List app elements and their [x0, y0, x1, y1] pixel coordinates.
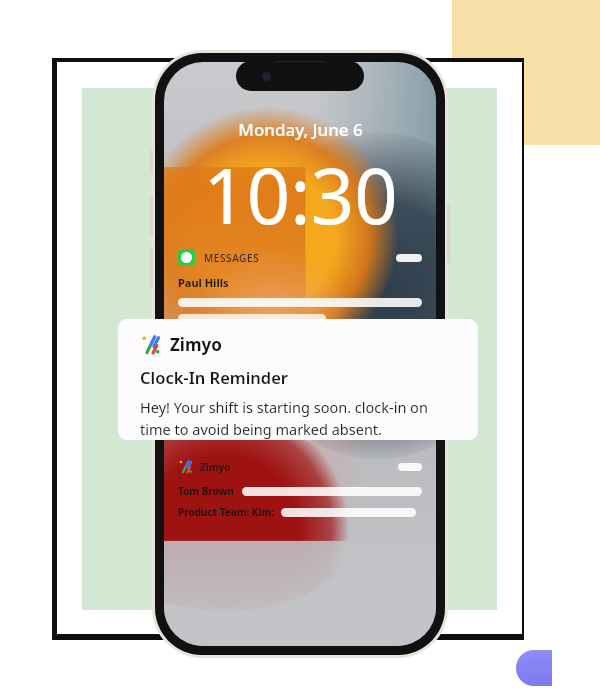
staticText: Zimyo — [170, 333, 222, 356]
staticText: Product Team: Kim: — [178, 505, 275, 519]
button[interactable]: Zimyo — [118, 319, 478, 440]
staticText: Hey! Your shift is starting soon. clock-… — [140, 397, 428, 439]
button[interactable]: MESSAGES — [164, 249, 436, 646]
staticText: Tom Brown — [178, 484, 234, 498]
button[interactable]: Zimyo — [164, 459, 436, 646]
staticText: MESSAGES — [204, 251, 260, 265]
staticText: Monday, June 6 — [238, 118, 363, 141]
staticText: Zimyo — [200, 460, 231, 474]
staticText: Clock-In Reminder — [140, 366, 289, 388]
staticText: Paul Hills — [178, 275, 229, 290]
staticText: 10:30 — [203, 143, 398, 247]
